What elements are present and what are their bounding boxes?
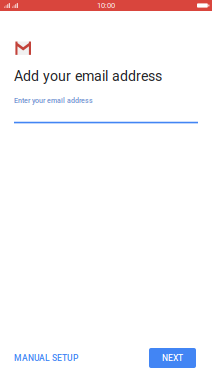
button[interactable]: NEXT	[149, 348, 196, 368]
staticText: MANUAL SETUP	[14, 353, 78, 363]
staticText: 10:00	[97, 1, 115, 10]
staticText: NEXT	[162, 353, 183, 363]
button[interactable]: MANUAL SETUP	[0, 346, 92, 370]
staticText: Enter your email address	[14, 96, 93, 105]
staticText: Add your email address	[14, 68, 162, 84]
